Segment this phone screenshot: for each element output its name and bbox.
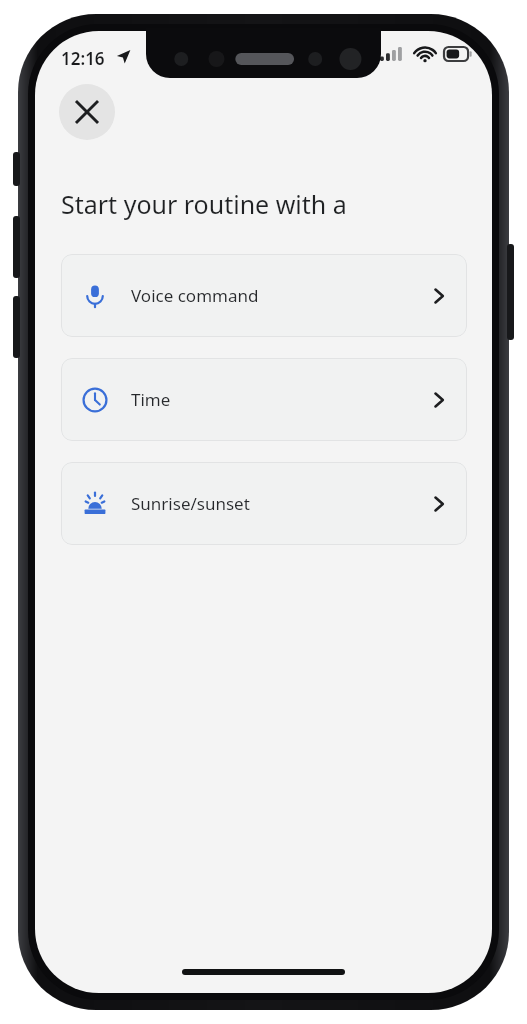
staticText: Sunrise/sunset [131, 492, 250, 515]
button[interactable]: Voice command [61, 254, 467, 337]
staticText: Voice command [131, 284, 259, 307]
button[interactable]: Time [61, 358, 467, 441]
button[interactable]: Close [59, 84, 115, 140]
button[interactable]: Sunrise/sunset [61, 462, 467, 545]
staticText: 12:16 [61, 47, 105, 70]
staticText: Start your routine with a [61, 187, 347, 221]
staticText: Time [131, 388, 171, 411]
